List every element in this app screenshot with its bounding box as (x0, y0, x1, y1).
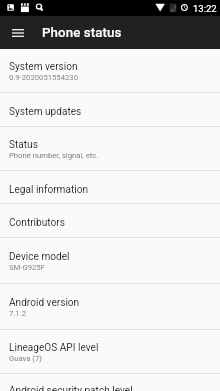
staticText: Phone number, signal, etc. (9, 151, 99, 160)
staticText: Phone status (42, 25, 122, 41)
button[interactable]: Android version (0, 284, 220, 330)
staticText: Contributors (9, 217, 65, 229)
staticText: Status (9, 139, 38, 151)
staticText: 7.1.2 (9, 309, 27, 318)
button[interactable]: Android security patch level (0, 374, 220, 391)
staticText: LineageOS API level (9, 342, 99, 354)
staticText: SM-G925F (9, 263, 45, 272)
staticText: Android security patch level (9, 385, 133, 391)
button[interactable]: Legal information (0, 171, 220, 204)
staticText: 0.9-2020051554230 (9, 73, 78, 82)
button[interactable]: LineageOS API level (0, 330, 220, 374)
button[interactable]: Open navigation drawer (1, 16, 34, 49)
staticText: Legal information (9, 184, 89, 196)
staticText: 13:22 (193, 3, 217, 14)
button[interactable]: Status (0, 127, 220, 171)
button[interactable]: System updates (0, 93, 220, 127)
staticText: System version (9, 61, 78, 73)
button[interactable]: System version (0, 49, 220, 93)
button[interactable]: Contributors (0, 204, 220, 238)
staticText: Guava (7) (9, 354, 42, 363)
button[interactable]: Device model (0, 238, 220, 284)
staticText: System updates (9, 106, 82, 118)
staticText: Android version (9, 297, 80, 309)
staticText: Device model (9, 251, 70, 263)
